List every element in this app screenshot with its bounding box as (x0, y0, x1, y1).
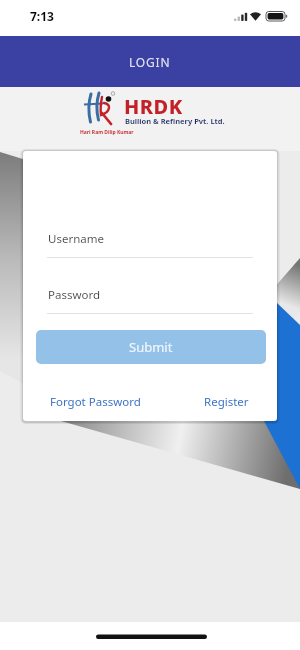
staticText: Submit (129, 338, 173, 356)
button[interactable]: Submit (36, 330, 266, 364)
staticText: Forgot Password (50, 394, 141, 410)
staticText: HRDK (124, 93, 183, 120)
button[interactable]: Username (47, 221, 253, 259)
staticText: 7:13 (30, 8, 54, 24)
staticText: Password (48, 287, 101, 303)
staticText: Username (48, 231, 104, 247)
staticText: Register (204, 394, 249, 410)
staticText: Bullion & Refinery Pvt. Ltd. (125, 116, 225, 126)
button[interactable]: Password (47, 277, 253, 315)
button[interactable]: Register (204, 394, 249, 410)
staticText: LOGIN (129, 54, 171, 70)
button[interactable]: Forgot Password (50, 394, 141, 410)
staticText: Hari Ram Dilip Kumar (80, 129, 134, 136)
